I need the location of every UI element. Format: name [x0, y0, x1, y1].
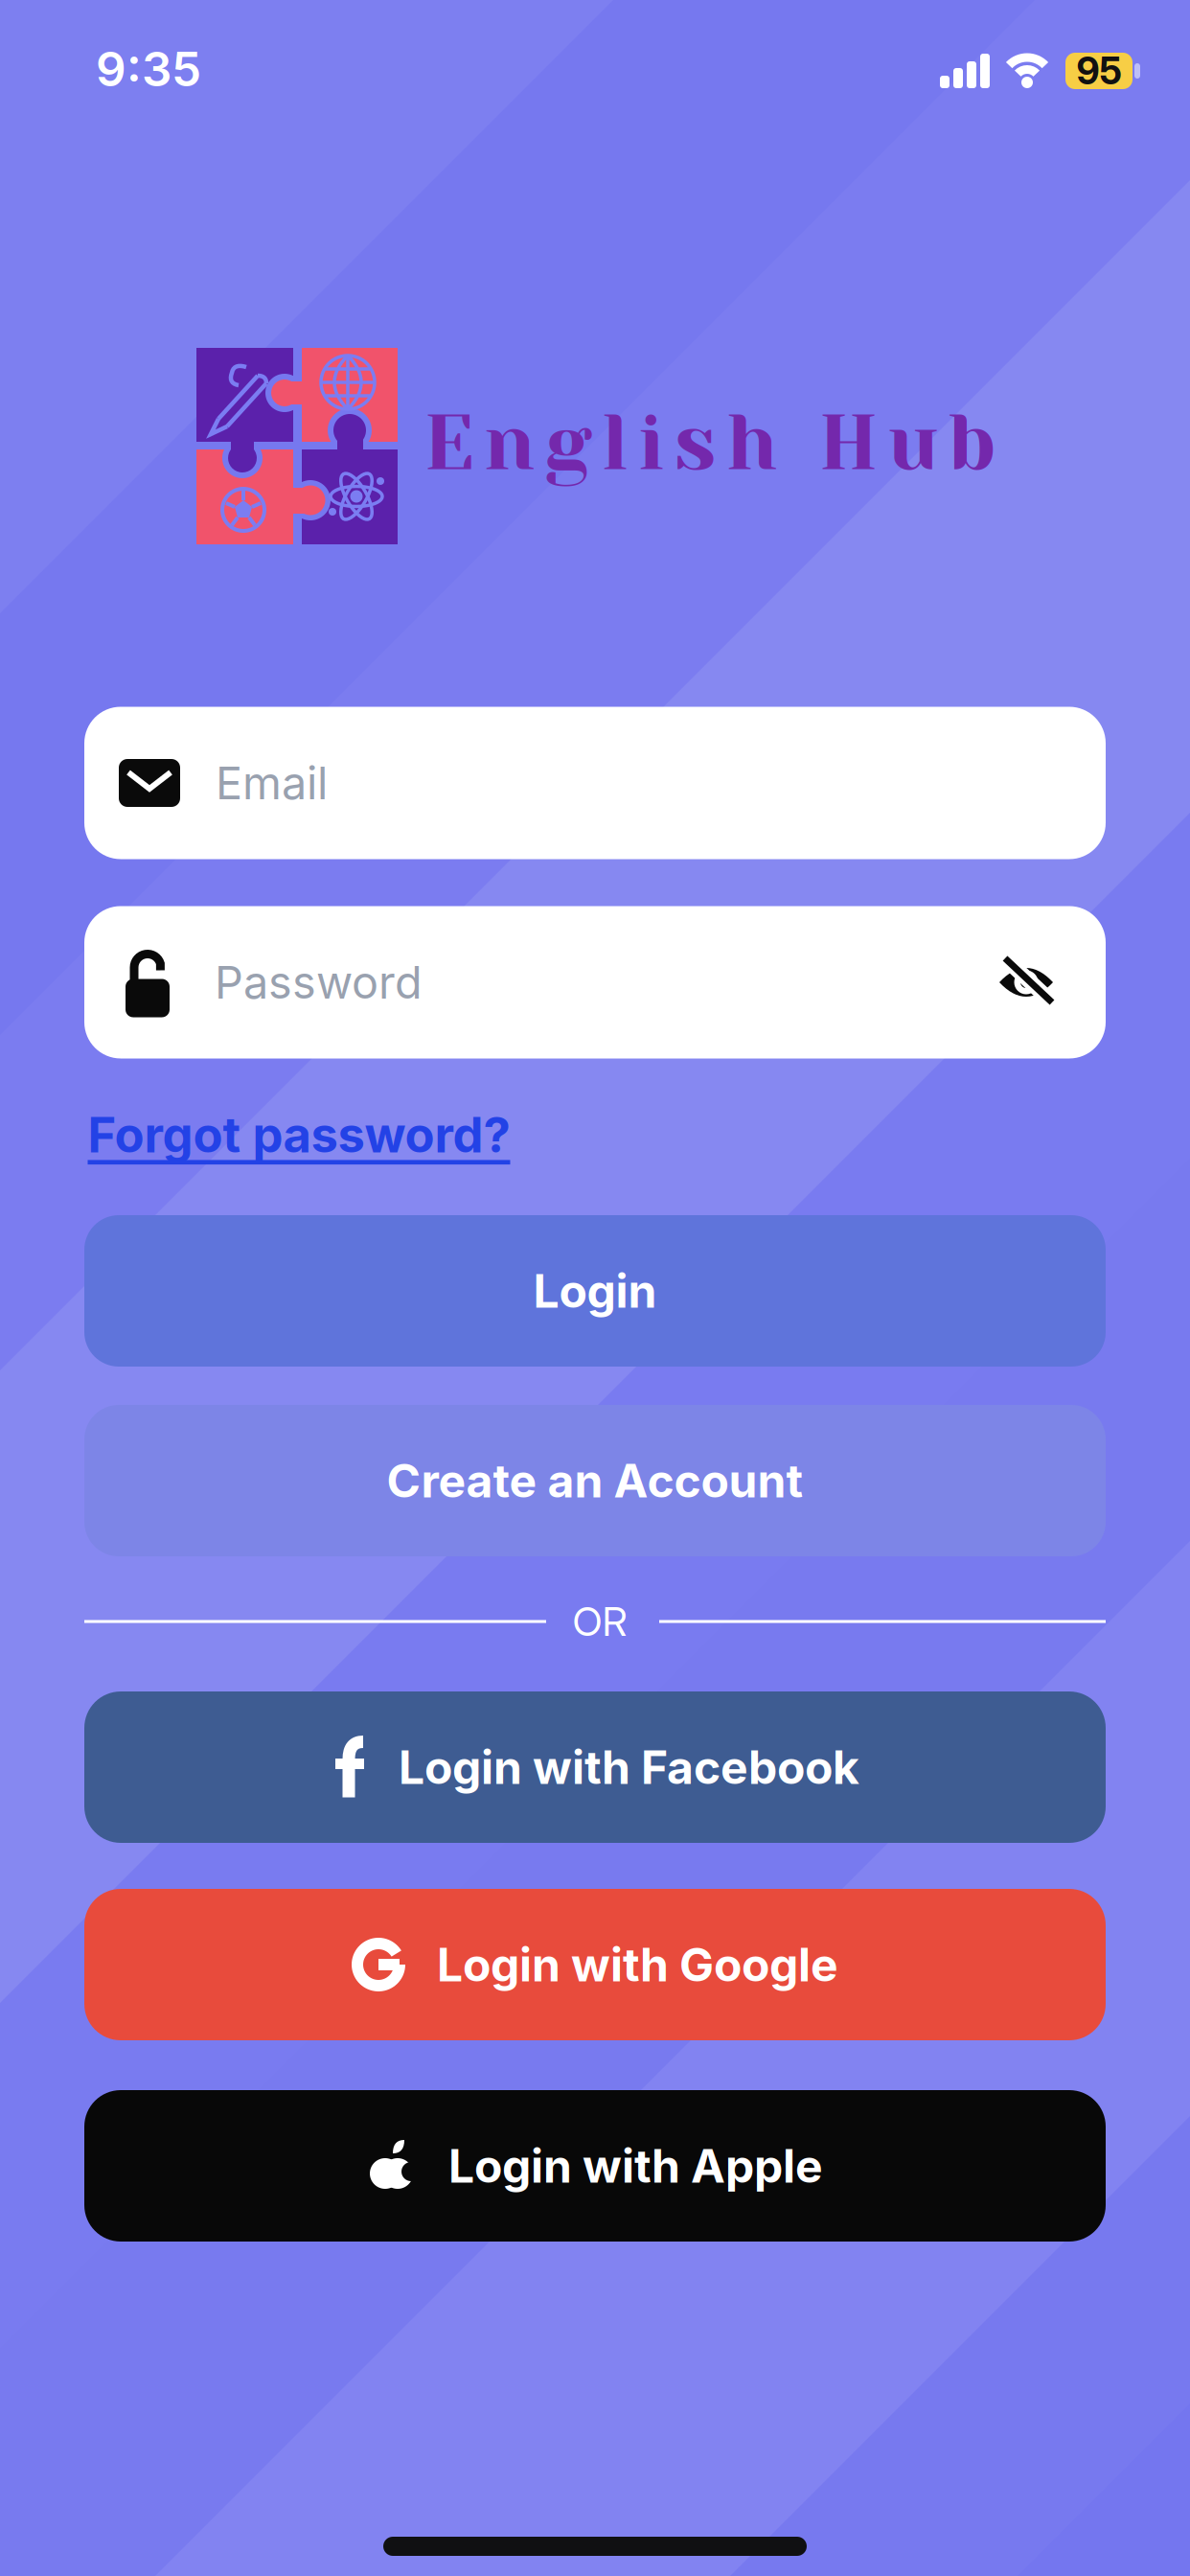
button[interactable]: Login with Apple	[84, 2090, 1106, 2242]
staticText: Password	[215, 955, 423, 1009]
staticText: English Hub	[424, 398, 996, 488]
staticText: Forgot password?	[88, 1105, 510, 1164]
staticText: Login with Apple	[448, 2138, 823, 2194]
button[interactable]: Login with Facebook	[84, 1691, 1106, 1843]
staticText: 9:35	[96, 40, 201, 98]
staticText: Email	[216, 756, 328, 810]
staticText: 95	[1076, 48, 1121, 93]
staticText: Create an Account	[387, 1453, 803, 1509]
staticText: Login with Google	[437, 1937, 838, 1992]
button[interactable]: Forgot password?	[88, 1105, 510, 1164]
button[interactable]: Login	[84, 1215, 1106, 1367]
button[interactable]: Create an Account	[84, 1405, 1106, 1556]
button[interactable]: Login with Google	[84, 1889, 1106, 2040]
staticText: Login with Facebook	[399, 1739, 859, 1795]
staticText: Login	[533, 1263, 657, 1319]
staticText: OR	[572, 1598, 627, 1645]
button[interactable]: Password	[84, 906, 1106, 1058]
button[interactable]: Show password	[997, 957, 1055, 1007]
button[interactable]: Email	[84, 707, 1106, 859]
